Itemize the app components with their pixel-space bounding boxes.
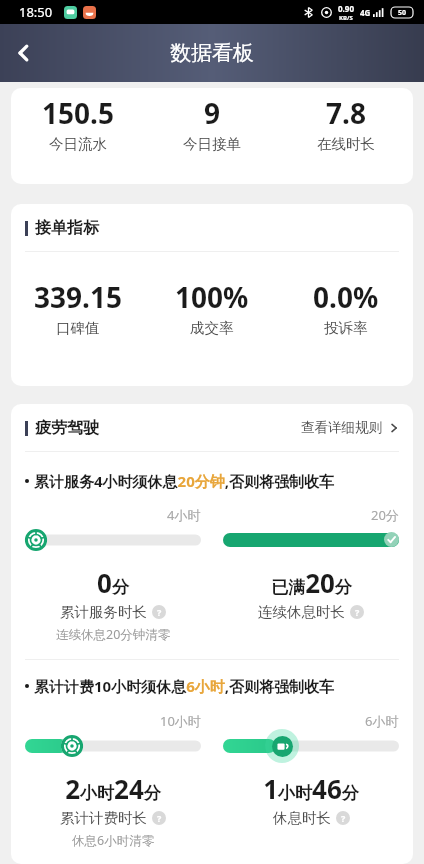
staticText: 6小时 (365, 712, 399, 730)
other: 帮助 (336, 811, 350, 825)
staticText: 150.5 (42, 94, 114, 132)
staticText: 口碑值 (56, 319, 100, 337)
other: 帮助 (152, 605, 166, 619)
button[interactable]: 连续休息时长 (258, 603, 364, 621)
staticText: 4小时 (167, 506, 201, 524)
staticText: KB/S (339, 14, 353, 22)
other: 帮助 (350, 605, 364, 619)
staticText: 成交率 (190, 319, 234, 337)
staticText: 已满20分 (271, 565, 352, 600)
staticText: ? (157, 606, 162, 618)
staticText: 累计服务4小时须休息20分钟,否则将强制收车 (34, 471, 335, 491)
staticText: 今日接单 (183, 135, 241, 153)
staticText: 累计服务时长 (60, 603, 147, 621)
staticText: 连续休息时长 (258, 603, 345, 621)
staticText: 0分 (97, 565, 129, 600)
staticText: 接单指标 (35, 218, 99, 238)
button[interactable]: 查看详细规则 (301, 419, 399, 436)
button[interactable]: 100% (145, 278, 279, 337)
staticText: ? (341, 812, 346, 824)
staticText: 查看详细规则 (301, 419, 382, 436)
button[interactable]: 累计计费时长 (60, 809, 166, 827)
button[interactable]: 9 (145, 94, 279, 153)
staticText: 休息时长 (273, 809, 331, 827)
staticText: 累计计费时长 (60, 809, 147, 827)
button[interactable]: 休息时长 (273, 809, 350, 827)
staticText: 今日流水 (49, 135, 107, 153)
staticText: 1小时46分 (263, 771, 359, 806)
staticText: 10小时 (160, 712, 201, 730)
staticText: ? (355, 606, 360, 618)
staticText: 339.15 (34, 278, 122, 316)
button[interactable]: 150.5 (11, 94, 145, 153)
staticText: 在线时长 (317, 135, 375, 153)
staticText: 连续休息20分钟清零 (56, 626, 171, 643)
staticText: 50 (398, 8, 407, 18)
button[interactable]: 339.15 (11, 278, 145, 337)
staticText: ? (157, 812, 162, 824)
button[interactable]: 7.8 (279, 94, 413, 153)
staticText: 数据看板 (170, 40, 254, 66)
staticText: 投诉率 (324, 319, 368, 337)
button[interactable]: 0.0% (279, 278, 413, 337)
staticText: 累计计费10小时须休息6小时,否则将强制收车 (34, 676, 335, 696)
staticText: 休息6小时清零 (72, 832, 155, 849)
staticText: 4G (360, 7, 371, 18)
staticText: 100% (175, 278, 249, 316)
staticText: 20分 (371, 506, 399, 524)
button[interactable]: 返回 (0, 29, 48, 77)
staticText: 9 (204, 94, 221, 132)
staticText: 0.0% (313, 278, 379, 316)
other: 帮助 (152, 811, 166, 825)
staticText: 2小时24分 (65, 771, 161, 806)
staticText: 0.90 (338, 3, 354, 14)
staticText: 疲劳驾驶 (35, 418, 99, 438)
staticText: 7.8 (326, 94, 366, 132)
staticText: 18:50 (19, 3, 53, 21)
button[interactable]: 累计服务时长 (60, 603, 166, 621)
